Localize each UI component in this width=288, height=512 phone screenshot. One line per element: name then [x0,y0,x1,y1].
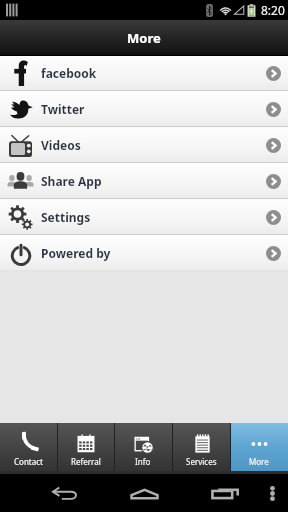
staticText: Powered by [41,245,111,261]
button[interactable]: More [230,423,288,471]
staticText: Info [135,456,151,467]
staticText: facebook [41,65,97,81]
button[interactable]: Referral [57,423,114,471]
staticText: 8:20 [261,2,285,18]
staticText: Services [186,456,217,467]
staticText: Settings [41,209,91,225]
staticText: Referral [71,456,101,467]
button[interactable]: Share App [0,164,288,200]
button[interactable]: Twitter [0,92,288,128]
staticText: Share App [41,173,102,189]
button[interactable]: Services [172,423,230,471]
staticText: More [249,456,269,467]
button[interactable]: Recent apps [185,474,265,512]
button[interactable]: Back [24,474,104,512]
button[interactable]: Info [114,423,172,471]
button[interactable]: Videos [0,128,288,164]
button[interactable]: Powered by [0,236,288,272]
staticText: Contact [14,456,43,467]
button[interactable]: More options [252,474,288,512]
button[interactable]: facebook [0,56,288,92]
button[interactable]: Settings [0,200,288,236]
button[interactable]: Home [104,474,184,512]
button[interactable]: Contact [0,423,57,471]
staticText: More [127,29,161,47]
staticText: Videos [41,137,81,153]
staticText: Twitter [41,101,85,117]
